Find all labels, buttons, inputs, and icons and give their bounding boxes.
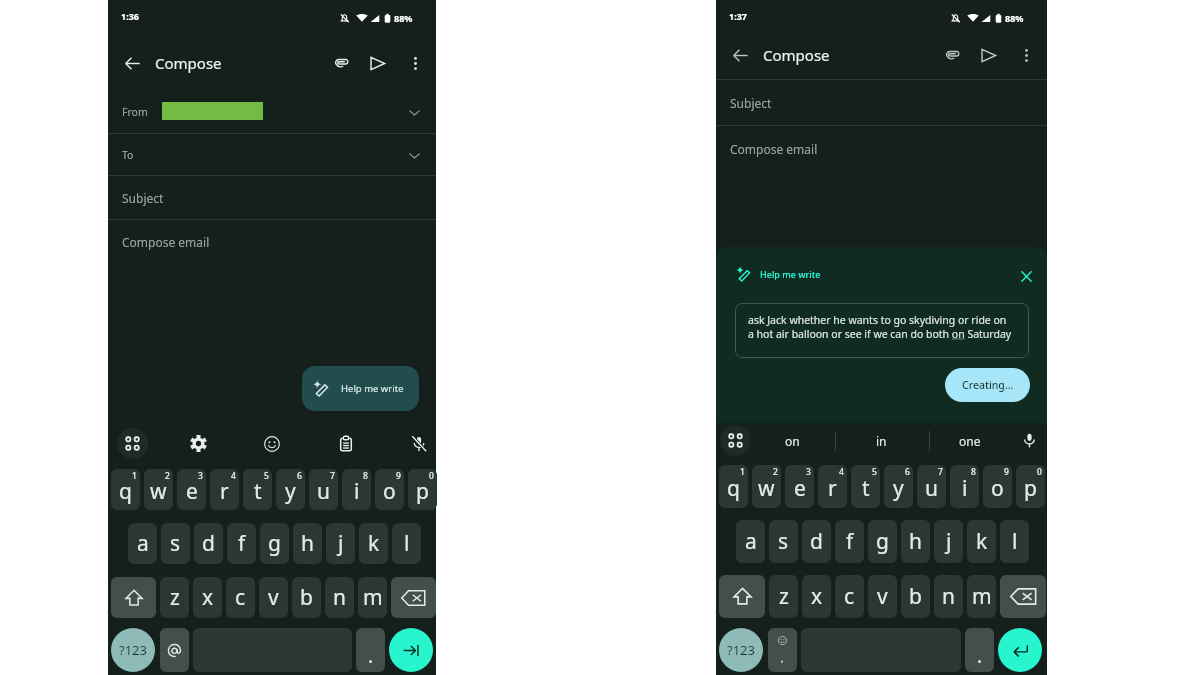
button[interactable]: 6 [884,465,913,508]
button[interactable]: d [802,520,831,563]
button[interactable]: m [967,575,996,618]
button[interactable]: f [835,520,864,563]
button[interactable]: z [160,577,189,618]
button[interactable]: h [901,520,930,563]
button[interactable]: Subject [108,176,436,219]
button[interactable]: a [128,523,157,564]
button[interactable]: 4 [210,469,239,510]
button[interactable]: Send [974,41,1002,69]
staticText: a [137,529,149,558]
button[interactable]: 9 [983,465,1012,508]
staticText: b [909,582,922,611]
button[interactable]: c [226,577,255,618]
button[interactable]: 1 [719,465,748,508]
button[interactable]: Voice input off [408,433,429,454]
button[interactable]: g [868,520,897,563]
button[interactable]: Creating... [945,368,1030,402]
button[interactable]: g [260,523,289,564]
button[interactable]: 9 [375,469,404,510]
button[interactable]: b [292,577,321,618]
button[interactable]: m [358,577,387,618]
button[interactable]: To [108,134,436,175]
button[interactable]: 0 [1016,465,1045,508]
button[interactable]: c [835,575,864,618]
button[interactable]: a [736,520,765,563]
button[interactable]: 8 [950,465,979,508]
button[interactable]: 3 [785,465,814,508]
staticText: 8 [363,470,368,482]
button[interactable]: Clipboard [335,433,356,454]
button[interactable]: x [193,577,222,618]
button[interactable]: h [293,523,322,564]
button[interactable]: Keyboard modes [117,428,148,459]
staticText: e [186,477,198,506]
button[interactable]: Settings [188,433,209,454]
button[interactable]: Help me write [302,366,419,411]
button[interactable]: Expand from [401,99,427,125]
button[interactable]: x [802,575,831,618]
button[interactable]: 2 [144,469,173,510]
button[interactable]: Attach file [327,49,355,77]
button[interactable]: n [934,575,963,618]
button[interactable]: one [950,429,990,452]
button[interactable]: ?123 [719,628,763,672]
button[interactable]: in [861,429,901,452]
button[interactable]: Attach file [938,41,966,69]
button[interactable]: l [392,523,421,564]
button[interactable]: Voice input [1019,430,1040,451]
staticText: f [238,529,246,558]
button[interactable] [356,628,385,672]
button[interactable]: 8 [342,469,371,510]
button[interactable]: v [259,577,288,618]
button[interactable]: s [161,523,190,564]
button[interactable]: 4 [818,465,847,508]
button[interactable]: 2 [752,465,781,508]
button[interactable]: Backspace [391,577,436,618]
button[interactable]: k [359,523,388,564]
button[interactable]: 5 [243,469,272,510]
button[interactable]: More options [1012,41,1040,69]
button[interactable]: 1 [111,469,140,510]
button[interactable]: d [194,523,223,564]
button[interactable]: s [769,520,798,563]
button[interactable]: Enter [998,628,1042,672]
button[interactable]: b [901,575,930,618]
button[interactable]: More options [401,49,429,77]
button[interactable]: on [772,429,812,452]
button[interactable]: Compose email [716,126,1047,246]
button[interactable]: Send [363,49,391,77]
button[interactable]: 0 [408,469,437,510]
button[interactable] [965,628,994,672]
button[interactable]: Expand to [401,142,427,168]
button[interactable]: Next [389,628,433,672]
button[interactable]: , [768,628,797,672]
button[interactable]: Subject [716,80,1047,125]
button[interactable]: Emoji [261,433,282,454]
button[interactable]: Shift [719,575,765,618]
button[interactable]: 6 [276,469,305,510]
button[interactable]: j [326,523,355,564]
button[interactable] [160,628,189,672]
button[interactable]: Close [1014,264,1038,288]
staticText: y [893,474,904,503]
button[interactable]: Compose email [108,220,436,360]
button[interactable]: v [868,575,897,618]
button[interactable]: j [934,520,963,563]
button[interactable]: ?123 [111,628,155,672]
button[interactable]: 5 [851,465,880,508]
button[interactable]: Shift [111,577,156,618]
button[interactable]: 3 [177,469,206,510]
button[interactable]: Keyboard modes [720,425,751,456]
button[interactable]: z [769,575,798,618]
button[interactable]: Backspace [1000,575,1046,618]
button[interactable]: f [227,523,256,564]
button[interactable]: 7 [309,469,338,510]
button[interactable]: Back [117,48,147,78]
button[interactable]: l [1000,520,1029,563]
button[interactable]: n [325,577,354,618]
button[interactable]: k [967,520,996,563]
button[interactable]: Back [725,40,755,70]
button[interactable]: 7 [917,465,946,508]
